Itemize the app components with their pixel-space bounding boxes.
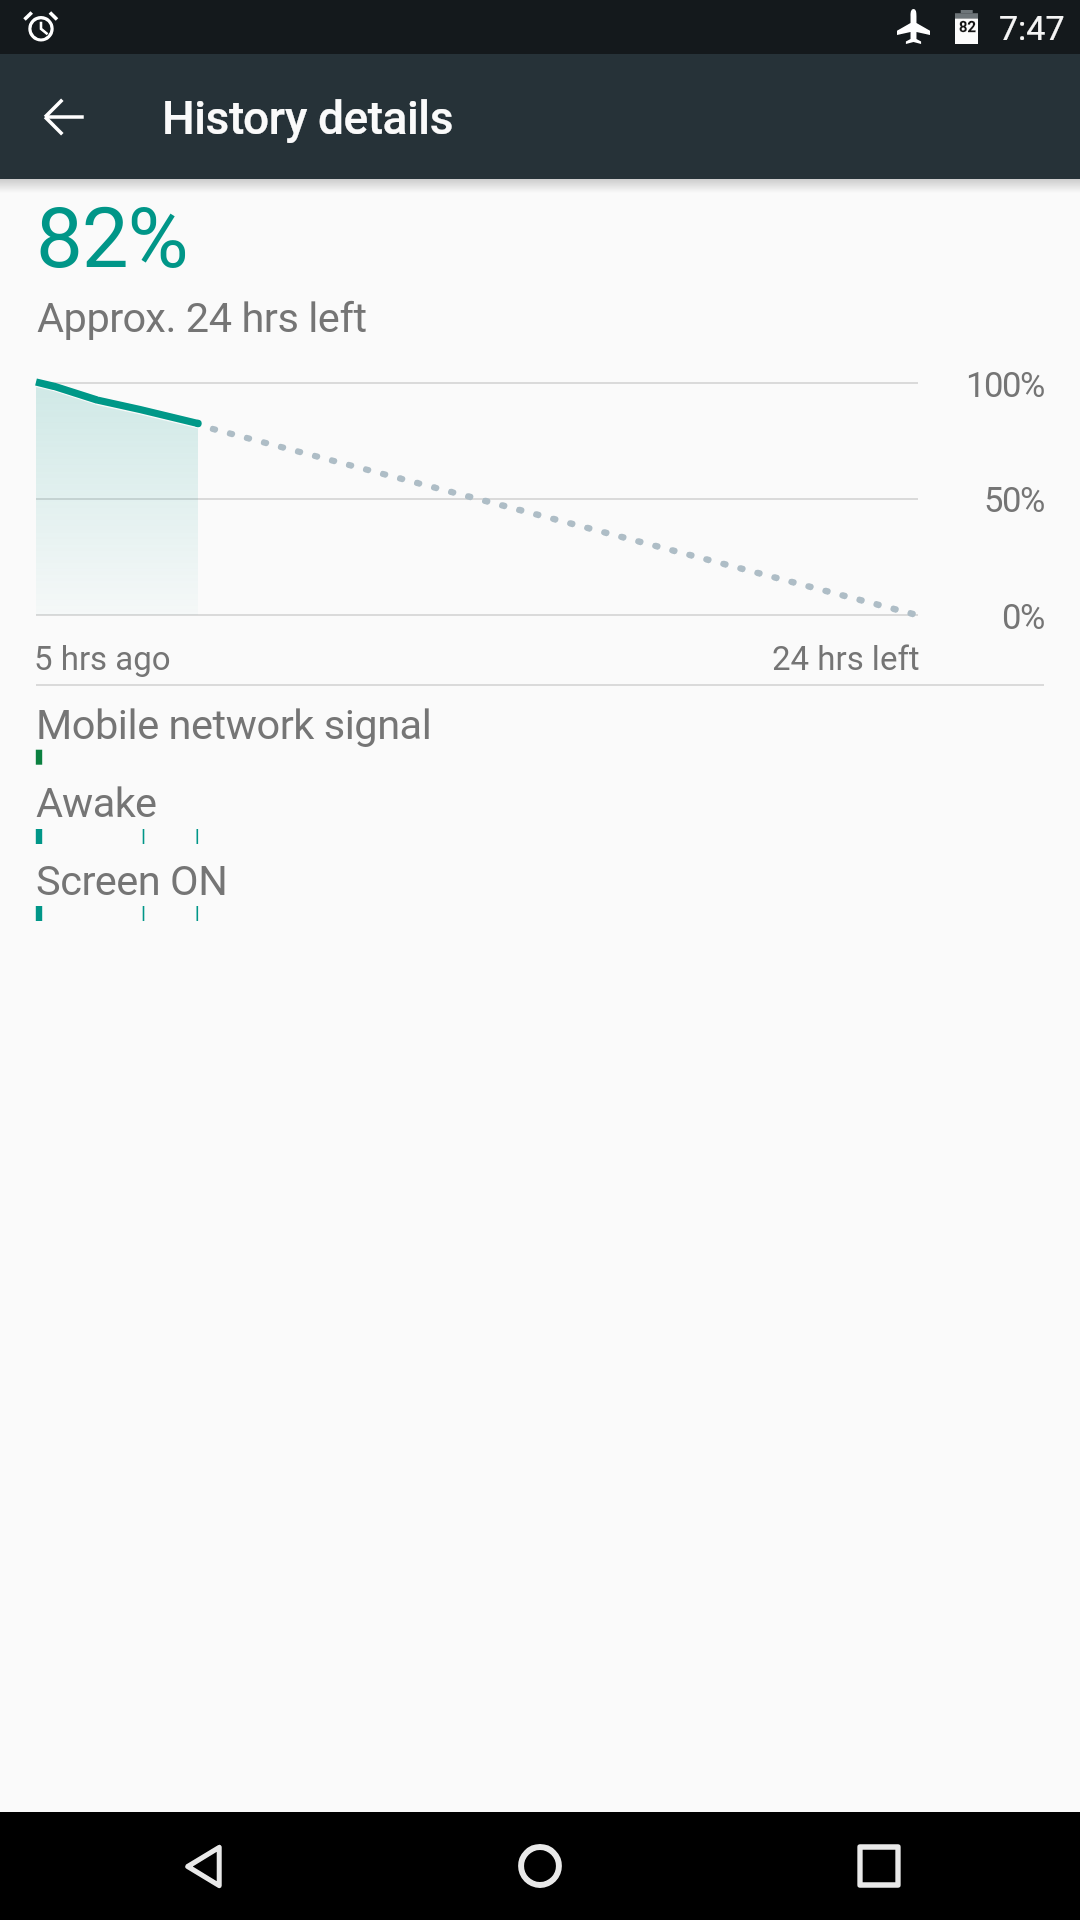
staticText: 24 hrs left [772, 639, 920, 678]
button[interactable]: Awake [0, 770, 1080, 848]
staticText: Approx. 24 hrs left [37, 293, 367, 342]
staticText: History details [162, 91, 453, 145]
staticText: 5 hrs ago [34, 639, 171, 678]
button[interactable]: Home [486, 1812, 594, 1920]
button[interactable]: Recent apps [823, 1812, 931, 1920]
staticText: Screen ON [36, 856, 228, 905]
staticText: 0% [1002, 597, 1044, 638]
button[interactable]: Navigate up [17, 72, 107, 162]
button[interactable]: Mobile network signal [0, 692, 1080, 770]
staticText: 50% [983, 480, 1044, 521]
staticText: Awake [36, 778, 157, 827]
button[interactable]: Screen ON [0, 848, 1080, 926]
staticText: 7:47 [999, 8, 1065, 48]
staticText: 82 [959, 18, 976, 35]
staticText: Mobile network signal [36, 700, 432, 749]
staticText: 82% [36, 190, 188, 288]
button[interactable]: Back [148, 1812, 256, 1920]
staticText: 100% [965, 365, 1044, 406]
